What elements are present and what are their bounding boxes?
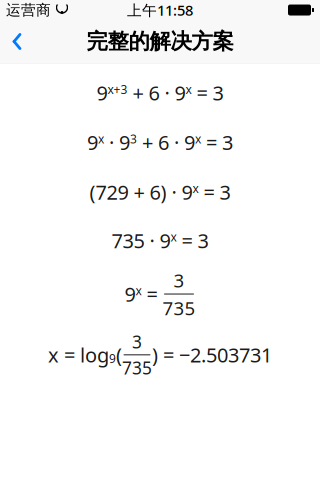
staticText: x xyxy=(135,283,141,298)
staticText: x xyxy=(192,180,198,196)
staticText: 3 xyxy=(173,268,184,292)
staticText: ) xyxy=(152,342,158,368)
staticText: 运营商 xyxy=(6,1,51,19)
staticText: 上午11:58 xyxy=(127,0,193,20)
staticText: x xyxy=(170,229,176,245)
staticText: 9 xyxy=(124,281,135,307)
staticText: x xyxy=(195,131,201,147)
staticText: + 6 · 9 xyxy=(127,79,185,106)
staticText: 9 xyxy=(109,350,116,366)
staticText: x = log xyxy=(48,342,109,368)
staticText: + 6 · 9 xyxy=(137,129,195,156)
staticText: x xyxy=(185,81,191,97)
staticText: 735 xyxy=(162,295,195,320)
staticText: 9 xyxy=(87,129,98,156)
staticText: = 3 xyxy=(191,79,223,106)
staticText: = xyxy=(141,281,162,307)
staticText: 3 xyxy=(132,330,142,353)
staticText: = 3 xyxy=(201,129,233,156)
staticText: x xyxy=(98,131,104,147)
staticText: x+3 xyxy=(107,81,127,97)
staticText: 完整的解决方案 xyxy=(86,28,233,55)
staticText: 9 xyxy=(96,79,107,106)
staticText: = 3 xyxy=(198,179,230,205)
staticText: · 9 xyxy=(104,129,130,156)
staticText: ( xyxy=(116,342,122,368)
staticText: (729 + 6) · 9 xyxy=(89,179,192,205)
button[interactable]: Back xyxy=(2,19,32,63)
staticText: = −2.503731 xyxy=(158,342,272,368)
staticText: 735 xyxy=(122,356,152,379)
staticText: 735 · 9 xyxy=(111,227,170,254)
staticText: = 3 xyxy=(176,227,208,254)
staticText: 3 xyxy=(130,131,137,147)
